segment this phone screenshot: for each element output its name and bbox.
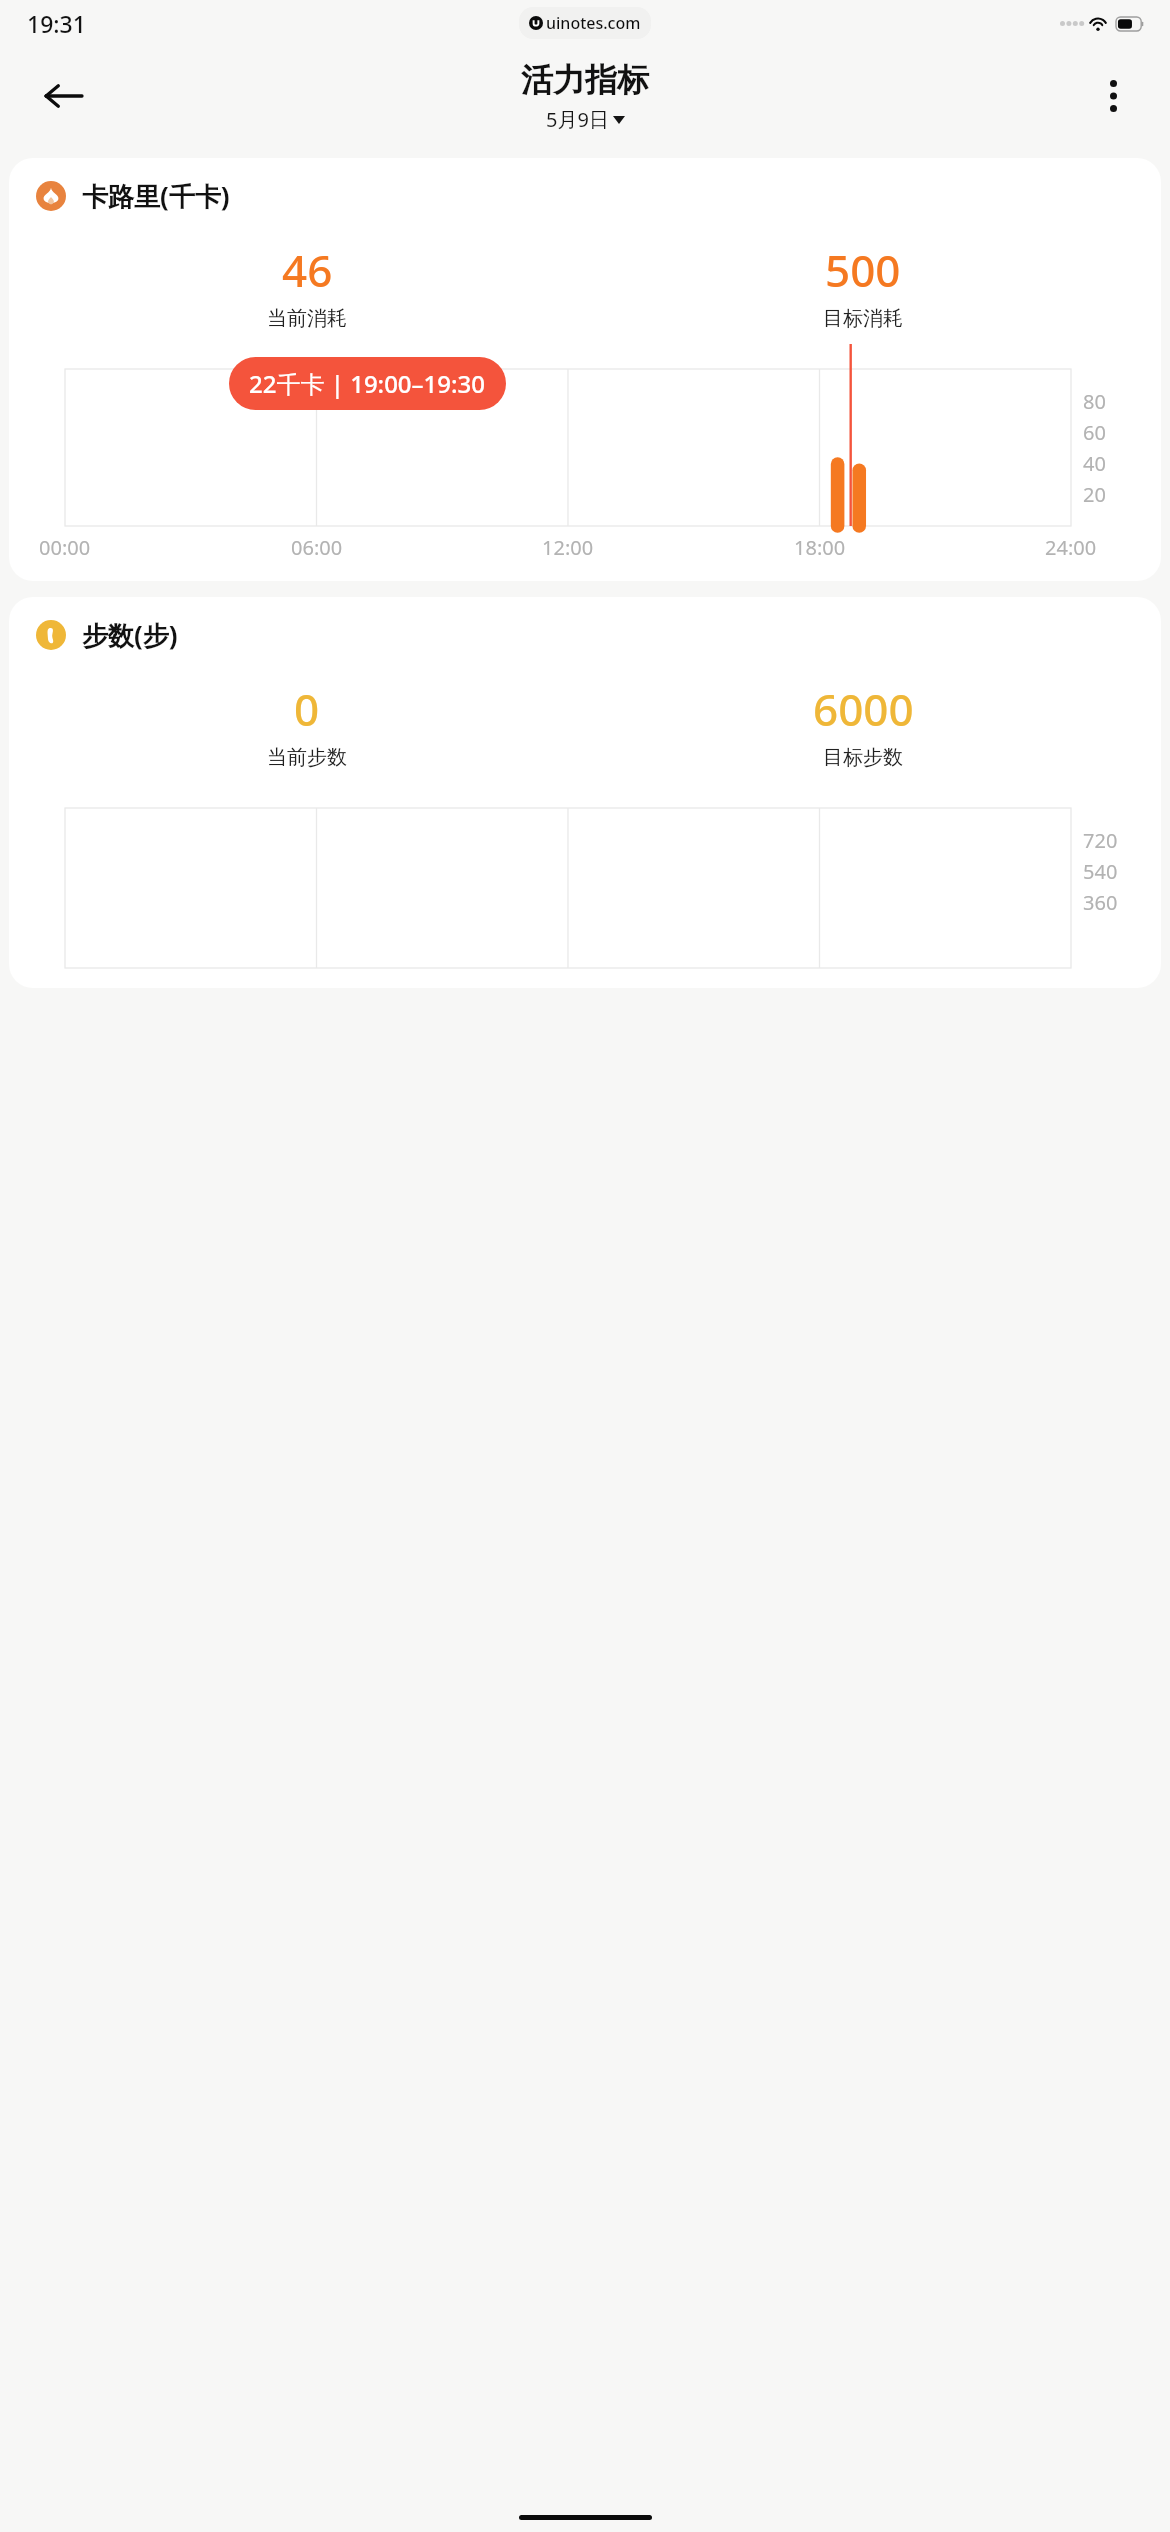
staticText: 当前步数 bbox=[267, 745, 347, 770]
staticText: 06:00 bbox=[291, 534, 343, 561]
staticText: 540 bbox=[1083, 858, 1118, 885]
staticText: 24:00 bbox=[1045, 534, 1097, 561]
staticText: 720 bbox=[1083, 827, 1118, 854]
staticText: 目标消耗 bbox=[823, 306, 903, 331]
staticText: 20 bbox=[1083, 481, 1106, 508]
staticText: 5月9日 bbox=[546, 106, 609, 133]
staticText: 19:31 bbox=[27, 8, 86, 39]
staticText: 00:00 bbox=[39, 534, 91, 561]
staticText: 46 bbox=[282, 240, 333, 300]
staticText: 500 bbox=[825, 240, 901, 300]
staticText: 步数(步) bbox=[82, 617, 178, 653]
staticText: 6000 bbox=[813, 679, 914, 739]
button[interactable]: 5月9日 bbox=[546, 106, 625, 133]
staticText: 0 bbox=[294, 679, 320, 739]
staticText: 12:00 bbox=[542, 534, 594, 561]
staticText: 目标步数 bbox=[823, 745, 903, 770]
button[interactable]: More options bbox=[1086, 69, 1140, 123]
staticText: uinotes.com bbox=[546, 12, 641, 34]
staticText: 80 bbox=[1083, 388, 1106, 415]
staticText: 卡路里(千卡) bbox=[82, 178, 230, 214]
staticText: 360 bbox=[1083, 889, 1118, 916]
staticText: 当前消耗 bbox=[267, 306, 347, 331]
button[interactable]: Back bbox=[34, 67, 92, 125]
staticText: 40 bbox=[1083, 450, 1106, 477]
staticText: 18:00 bbox=[794, 534, 846, 561]
staticText: 活力指标 bbox=[521, 60, 649, 100]
button[interactable]: 步数(步) bbox=[9, 597, 1161, 988]
staticText: 60 bbox=[1083, 419, 1106, 446]
button[interactable]: 卡路里(千卡) bbox=[9, 158, 1161, 581]
staticText: 22千卡 | 19:00–19:30 bbox=[249, 367, 486, 400]
